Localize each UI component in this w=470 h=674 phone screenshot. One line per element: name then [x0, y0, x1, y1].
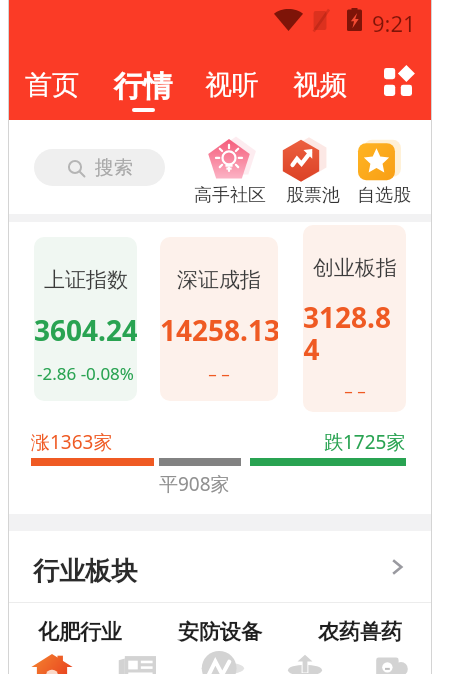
- button[interactable]: 搜索: [34, 149, 165, 186]
- button[interactable]: 首页: [25, 44, 79, 102]
- button[interactable]: 高手社区: [193, 139, 267, 207]
- staticText: 3604.24: [34, 311, 137, 349]
- staticText: 3128.8: [303, 298, 391, 336]
- staticText: – –: [344, 379, 366, 402]
- staticText: 上证指数: [44, 267, 128, 293]
- staticText: 高手社区: [194, 184, 266, 207]
- button[interactable]: 深证成指: [160, 237, 278, 401]
- button[interactable]: 创业板指: [303, 225, 406, 412]
- staticText: 搜索: [95, 156, 133, 180]
- button[interactable]: 视频: [293, 44, 347, 102]
- staticText: 视听: [205, 68, 259, 102]
- staticText: 安防设备: [178, 619, 262, 645]
- staticText: 首页: [25, 68, 79, 102]
- button[interactable]: Trade: [263, 653, 347, 674]
- button[interactable]: Quotes: [179, 653, 263, 674]
- button[interactable]: Home: [9, 653, 94, 674]
- staticText: 农药兽药: [318, 619, 402, 645]
- staticText: 股票池: [286, 184, 340, 207]
- staticText: 视频: [293, 68, 347, 102]
- staticText: 创业板指: [313, 255, 397, 281]
- button[interactable]: 视听: [205, 44, 259, 102]
- staticText: 化肥行业: [38, 619, 122, 645]
- button[interactable]: 自选股: [347, 139, 421, 207]
- staticText: 平908家: [159, 471, 230, 497]
- staticText: 深证成指: [177, 267, 261, 293]
- button[interactable]: 上证指数: [34, 237, 137, 401]
- staticText: 4: [303, 330, 320, 368]
- button[interactable]: 行业板块: [9, 531, 431, 603]
- button[interactable]: News: [94, 653, 179, 674]
- button[interactable]: 行情: [114, 44, 172, 112]
- button[interactable]: 股票池: [270, 139, 344, 207]
- staticText: 自选股: [357, 184, 411, 207]
- staticText: -2.86 -0.08%: [37, 362, 134, 385]
- staticText: 14258.13: [160, 311, 278, 349]
- button[interactable]: More apps: [381, 65, 415, 99]
- button[interactable]: Profile: [347, 653, 431, 674]
- staticText: 涨1363家: [31, 429, 113, 455]
- staticText: 9:21: [372, 8, 416, 38]
- staticText: 跌1725家: [324, 429, 406, 455]
- staticText: – –: [208, 362, 230, 385]
- staticText: 行情: [114, 68, 172, 105]
- staticText: 行业板块: [33, 555, 137, 588]
